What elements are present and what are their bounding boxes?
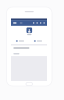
button[interactable]: Menu <box>43 22 45 24</box>
button[interactable]: Message <box>30 39 46 43</box>
button[interactable]: Friend requests <box>33 22 34 24</box>
button[interactable]: Notifications <box>40 22 41 24</box>
button[interactable]: Messages <box>36 22 38 24</box>
button[interactable]: Back <box>13 22 16 24</box>
button[interactable]: Add friend <box>12 39 28 43</box>
